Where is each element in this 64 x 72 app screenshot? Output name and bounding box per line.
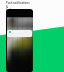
staticText: Push notifications & [6,1,32,8]
staticText: lock screen controls [6,8,32,15]
button[interactable] [7,30,32,37]
